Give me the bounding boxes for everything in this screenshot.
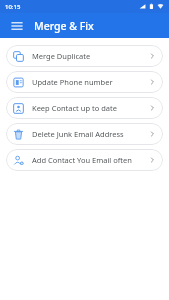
button[interactable]: Merge Duplicate: [6, 45, 163, 67]
button[interactable]: Add Contact You Email often: [6, 149, 163, 171]
staticText: 10:15: [5, 3, 21, 11]
button[interactable]: Open navigation menu: [9, 18, 25, 34]
button[interactable]: Update Phone number: [6, 71, 163, 93]
staticText: Add Contact You Email often: [32, 155, 148, 165]
staticText: Update Phone number: [32, 77, 148, 87]
staticText: Delete Junk Email Address: [32, 129, 148, 139]
button[interactable]: Delete Junk Email Address: [6, 123, 163, 145]
staticText: Merge Duplicate: [32, 51, 148, 61]
staticText: Merge & Fix: [34, 19, 94, 33]
staticText: Keep Contact up to date: [32, 103, 148, 113]
button[interactable]: Keep Contact up to date: [6, 97, 163, 119]
